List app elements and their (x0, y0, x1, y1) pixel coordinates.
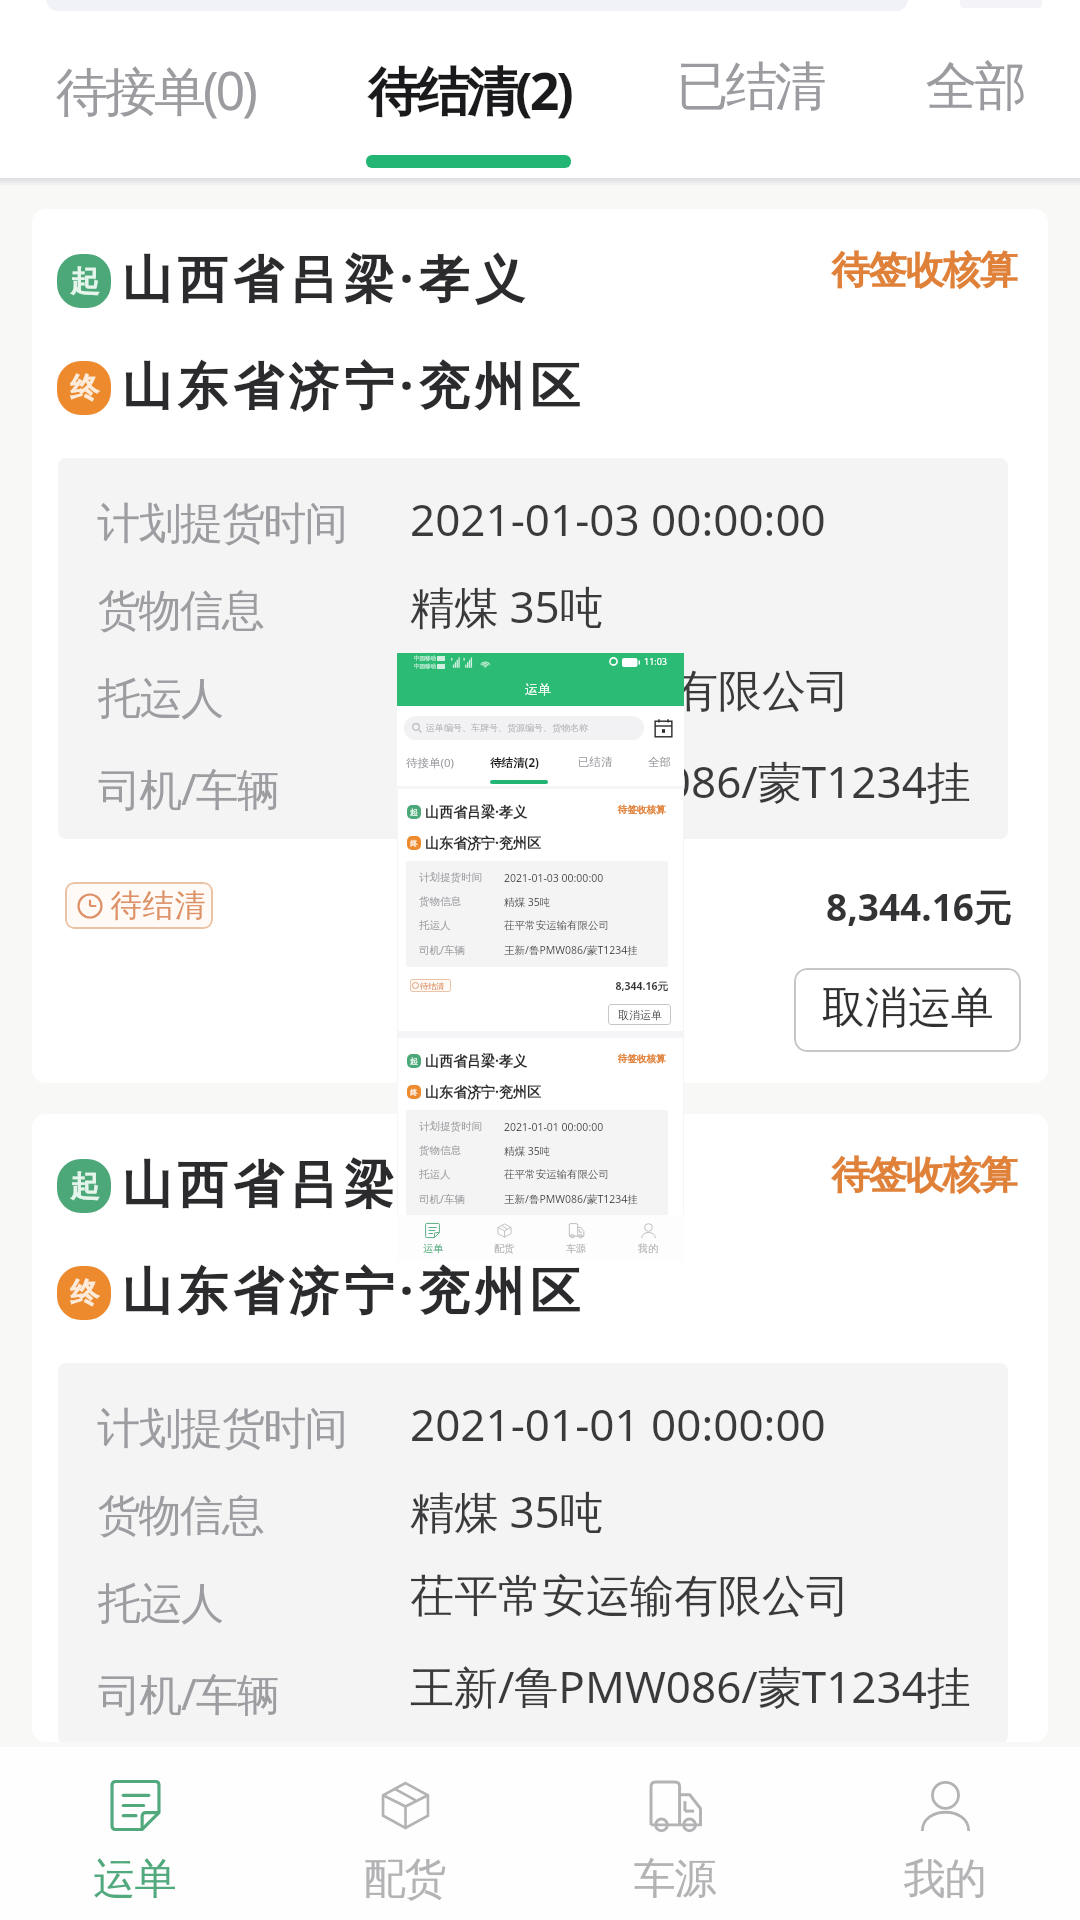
staticText: 山西省吕梁·孝义 (122, 244, 531, 312)
other: Calendar (654, 718, 673, 738)
staticText: 起 (70, 263, 99, 300)
button[interactable]: 待结清(2) (481, 748, 565, 778)
staticText: 待签收核算 (618, 1053, 666, 1065)
button[interactable]: 运单 (0, 1747, 270, 1920)
staticText: 计划提货时间 (419, 871, 482, 884)
button[interactable]: 配货 (468, 1215, 540, 1262)
staticText: 托运人 (98, 1577, 223, 1631)
staticText: 待签收核算 (832, 1151, 1017, 1199)
staticText: 山西省吕梁·孝义 (425, 802, 527, 821)
staticText: 茌平常安运输有限公司 (504, 919, 609, 932)
button[interactable]: 取消运单 (794, 968, 1021, 1052)
staticText: 待结清(2) (368, 54, 572, 125)
staticText: 起 (70, 1168, 99, 1205)
staticText: 精煤 35吨 (504, 895, 551, 909)
button[interactable]: 车源 (540, 1215, 612, 1262)
button[interactable]: 取消运单 (608, 1004, 671, 1025)
staticText: 待签收核算 (618, 804, 666, 816)
staticText: 王新/鲁PMW086/蒙T1234挂 (504, 1192, 638, 1206)
staticText: 2021-01-01 00:00:00 (504, 1120, 604, 1134)
staticText: 待结清(2) (490, 755, 539, 771)
button[interactable]: 待接单(0) (397, 748, 481, 778)
staticText: 山东省济宁·兖州区 (425, 1082, 541, 1101)
staticText: 司机/车辆 (98, 759, 279, 818)
staticText: 配货 (494, 1242, 514, 1255)
staticText: 2021-01-03 00:00:00 (410, 489, 826, 549)
staticText: 山东省济宁·兖州区 (122, 351, 586, 419)
button[interactable]: 已结清 (565, 748, 635, 778)
button[interactable]: 全部 (872, 0, 1080, 176)
staticText: 计划提货时间 (98, 497, 347, 551)
staticText: 运单 (94, 1853, 176, 1906)
staticText: 全部 (648, 755, 671, 769)
staticText: 起 (410, 1057, 418, 1066)
staticText: 取消运单 (618, 1008, 662, 1022)
staticText: 终 (70, 370, 99, 407)
staticText: 待签收核算 (832, 246, 1017, 294)
staticText: 11:03 (644, 655, 668, 667)
staticText: 司机/车辆 (419, 943, 465, 957)
staticText: 配货 (364, 1853, 446, 1906)
staticText: 货物信息 (98, 1489, 264, 1543)
button[interactable]: 待接单(0) (0, 0, 310, 176)
button[interactable]: 起 (398, 789, 683, 1031)
staticText: 已结清 (678, 54, 825, 120)
staticText: 茌平常安运输有限公司 (410, 664, 850, 719)
staticText: 终 (410, 1088, 418, 1097)
staticText: 终 (410, 839, 418, 848)
staticText: 精煤 35吨 (504, 1144, 551, 1158)
staticText: 中国移动 (414, 663, 436, 670)
staticText: 取消运单 (822, 981, 994, 1035)
staticText: 我的 (904, 1853, 986, 1906)
staticText: 托运人 (98, 672, 223, 726)
staticText: 精煤 35吨 (410, 576, 604, 636)
staticText: 车源 (634, 1853, 716, 1906)
button[interactable]: 起 (32, 209, 1048, 1083)
staticText: 运单编号、车牌号、货源编号、货物名称 (426, 722, 588, 733)
staticText: 王新/鲁PMW086/蒙T1234挂 (504, 943, 638, 957)
staticText: 8,344.16元 (568, 979, 668, 993)
staticText: 茌平常安运输有限公司 (504, 1168, 609, 1181)
staticText: 托运人 (419, 1168, 451, 1181)
button[interactable]: 我的 (612, 1215, 684, 1262)
button[interactable]: 待结清 (65, 882, 213, 929)
staticText: 司机/车辆 (98, 1664, 279, 1723)
staticText: 司机/车辆 (419, 1192, 465, 1206)
staticText: 计划提货时间 (98, 1402, 347, 1456)
staticText: 起 (410, 808, 418, 817)
staticText: 王新/鲁PMW086/蒙T1234挂 (410, 751, 971, 811)
staticText: 山东省济宁·兖州区 (425, 833, 541, 852)
staticText: 待结清 (110, 886, 206, 925)
staticText: 货物信息 (419, 895, 461, 908)
staticText: 已结清 (578, 755, 613, 769)
staticText: 运单 (423, 1242, 443, 1255)
button[interactable]: 已结清 (630, 0, 872, 176)
button[interactable]: 待结清(2) (310, 0, 630, 176)
staticText: 待结清 (420, 981, 444, 991)
staticText: 终 (70, 1275, 99, 1312)
staticText: 山西省吕梁·孝义 (122, 1149, 531, 1217)
staticText: 计划提货时间 (419, 1120, 482, 1133)
staticText: 待接单(0) (56, 54, 255, 125)
staticText: 2021-01-01 00:00:00 (410, 1394, 826, 1454)
button[interactable]: 运单编号、车牌号、货源编号、货物名称 (404, 716, 644, 740)
staticText: 茌平常安运输有限公司 (410, 1569, 850, 1624)
staticText: 中国移动 (414, 655, 436, 662)
button[interactable]: Pick date (649, 714, 677, 742)
button[interactable]: 车源 (540, 1747, 810, 1920)
staticText: 车源 (566, 1242, 586, 1255)
button[interactable]: 运单 (397, 1215, 468, 1262)
staticText: 货物信息 (98, 584, 264, 638)
button[interactable]: 起 (32, 1114, 1048, 1742)
staticText: 山东省济宁·兖州区 (122, 1256, 586, 1324)
button[interactable]: 我的 (810, 1747, 1080, 1920)
staticText: 托运人 (419, 919, 451, 932)
staticText: 运单 (525, 681, 551, 697)
staticText: 待接单(0) (406, 755, 454, 771)
button[interactable]: 全部 (635, 748, 684, 778)
button[interactable]: 配货 (270, 1747, 540, 1920)
button[interactable]: 待结清 (410, 979, 451, 992)
button[interactable]: 起 (398, 1038, 683, 1215)
staticText: 2021-01-03 00:00:00 (504, 871, 604, 885)
staticText: 货物信息 (419, 1144, 461, 1157)
